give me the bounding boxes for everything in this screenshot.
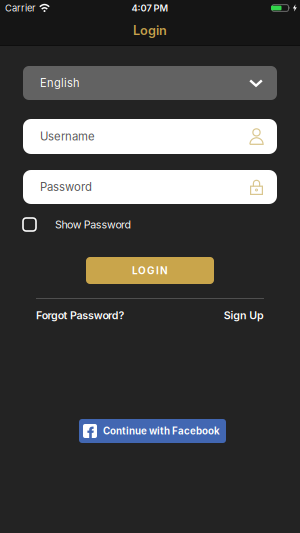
button[interactable]: Username — [23, 119, 277, 154]
staticText: Forgot Password? — [36, 309, 124, 322]
button[interactable]: Forgot Password? — [36, 309, 124, 322]
staticText: Login — [133, 23, 167, 38]
button[interactable]: Show Password — [0, 218, 300, 231]
staticText: Username — [40, 130, 95, 143]
button[interactable]: Continue with Facebook — [79, 419, 226, 443]
staticText: LOGIN — [132, 264, 168, 277]
staticText: Password — [40, 180, 92, 194]
staticText: Carrier — [5, 2, 36, 14]
staticText: Sign Up — [224, 309, 264, 322]
staticText: Continue with Facebook — [103, 425, 220, 437]
button[interactable]: Sign Up — [224, 309, 264, 322]
button[interactable]: LOGIN — [86, 257, 214, 284]
staticText: Show Password — [55, 218, 132, 231]
button[interactable]: English — [23, 66, 277, 100]
staticText: 4:07 PM — [131, 2, 168, 14]
staticText: English — [40, 76, 80, 90]
button[interactable]: Password — [23, 170, 277, 204]
